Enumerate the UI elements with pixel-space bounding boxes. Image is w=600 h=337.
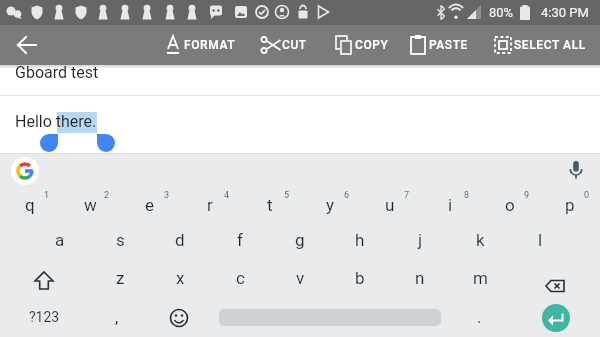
- staticText: CUT: [282, 38, 307, 52]
- button[interactable]: u: [360, 187, 420, 222]
- button[interactable]: k: [450, 222, 510, 258]
- staticText: e: [145, 195, 155, 215]
- staticText: a: [55, 230, 65, 250]
- staticText: p: [565, 195, 575, 215]
- button[interactable]: j: [390, 222, 450, 258]
- button[interactable]: c: [210, 259, 270, 297]
- button[interactable]: a: [30, 222, 90, 258]
- staticText: .: [477, 307, 482, 327]
- staticText: 80%: [489, 5, 514, 20]
- button[interactable]: CUT: [261, 25, 317, 65]
- staticText: r: [207, 195, 213, 215]
- staticText: f: [237, 230, 243, 250]
- staticText: 1: [44, 190, 50, 201]
- button[interactable]: e: [120, 187, 180, 222]
- button[interactable]: [526, 259, 586, 297]
- staticText: 4: [224, 190, 230, 201]
- staticText: PASTE: [429, 38, 468, 52]
- button[interactable]: d: [150, 222, 210, 258]
- staticText: Hello there.: [15, 112, 97, 131]
- staticText: 3: [164, 190, 170, 201]
- staticText: d: [175, 230, 185, 250]
- staticText: h: [355, 230, 365, 250]
- button[interactable]: m: [450, 259, 510, 297]
- staticText: 0: [584, 190, 590, 201]
- staticText: ,: [115, 307, 119, 327]
- staticText: w: [84, 195, 97, 215]
- staticText: z: [116, 268, 125, 288]
- staticText: 9: [524, 190, 530, 201]
- button[interactable]: [97, 134, 115, 152]
- button[interactable]: g: [270, 222, 330, 258]
- button[interactable]: l: [510, 222, 570, 258]
- button[interactable]: f: [210, 222, 270, 258]
- staticText: y: [326, 195, 335, 215]
- button[interactable]: [14, 259, 74, 297]
- button[interactable]: FORMAT: [163, 25, 243, 65]
- staticText: g: [295, 230, 305, 250]
- button[interactable]: i: [420, 187, 480, 222]
- staticText: ?123: [29, 309, 60, 325]
- button[interactable]: ,: [89, 297, 145, 337]
- staticText: j: [418, 230, 423, 250]
- staticText: 7: [404, 190, 410, 201]
- staticText: 8: [464, 190, 470, 201]
- button[interactable]: n: [390, 259, 450, 297]
- staticText: b: [355, 268, 365, 288]
- staticText: 6: [344, 190, 350, 201]
- staticText: 2: [104, 190, 110, 201]
- button[interactable]: r: [180, 187, 240, 222]
- button[interactable]: z: [90, 259, 150, 297]
- staticText: 4:30 PM: [541, 5, 589, 20]
- staticText: t: [267, 195, 273, 215]
- button[interactable]: [149, 297, 209, 337]
- button[interactable]: .: [451, 297, 507, 337]
- button[interactable]: v: [270, 259, 330, 297]
- staticText: m: [473, 268, 488, 288]
- staticText: q: [25, 195, 35, 215]
- button[interactable]: o: [480, 187, 540, 222]
- button[interactable]: x: [150, 259, 210, 297]
- staticText: u: [385, 195, 395, 215]
- button[interactable]: b: [330, 259, 390, 297]
- button[interactable]: w: [60, 187, 120, 222]
- button[interactable]: [8, 25, 48, 65]
- staticText: n: [415, 268, 425, 288]
- staticText: x: [176, 268, 185, 288]
- button[interactable]: COPY: [334, 25, 402, 65]
- staticText: i: [448, 195, 453, 215]
- button[interactable]: [40, 134, 58, 152]
- staticText: l: [538, 230, 543, 250]
- button[interactable]: h: [330, 222, 390, 258]
- button[interactable]: s: [90, 222, 150, 258]
- button[interactable]: SELECT ALL: [493, 25, 595, 65]
- staticText: o: [505, 195, 515, 215]
- button[interactable]: [542, 304, 570, 332]
- button[interactable]: p: [540, 187, 600, 222]
- button[interactable]: ?123: [16, 297, 72, 337]
- button[interactable]: PASTE: [408, 25, 478, 65]
- staticText: v: [296, 268, 305, 288]
- staticText: FORMAT: [184, 38, 236, 52]
- staticText: 5: [284, 190, 290, 201]
- button[interactable]: q: [0, 187, 60, 222]
- staticText: s: [116, 230, 125, 250]
- button[interactable]: [11, 157, 39, 185]
- button[interactable]: [0, 65, 600, 153]
- button[interactable]: [560, 153, 592, 187]
- staticText: k: [476, 230, 485, 250]
- button[interactable]: t: [240, 187, 300, 222]
- staticText: c: [236, 268, 245, 288]
- staticText: Gboard test: [15, 63, 99, 82]
- button[interactable]: y: [300, 187, 360, 222]
- staticText: SELECT ALL: [514, 38, 586, 52]
- staticText: COPY: [355, 38, 389, 52]
